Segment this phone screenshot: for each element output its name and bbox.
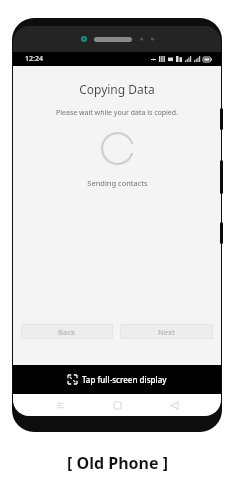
button[interactable]: Recent apps [50,395,70,415]
button[interactable]: Back [164,395,184,415]
staticText: 12:24 [25,54,43,64]
staticText: Please wait while your data is copied. [56,108,178,118]
staticText: Back [58,327,76,337]
staticText: Next [158,327,175,337]
staticText: Copying Data [79,81,155,97]
staticText: Tap full-screen display [82,374,167,385]
button[interactable]: Home [107,395,127,415]
staticText: Sending contacts [87,178,148,188]
staticText: [ Old Phone ] [67,452,168,474]
button[interactable]: Back [21,324,113,339]
button[interactable]: Next [120,324,213,339]
button[interactable]: Tap full-screen display [13,365,221,394]
